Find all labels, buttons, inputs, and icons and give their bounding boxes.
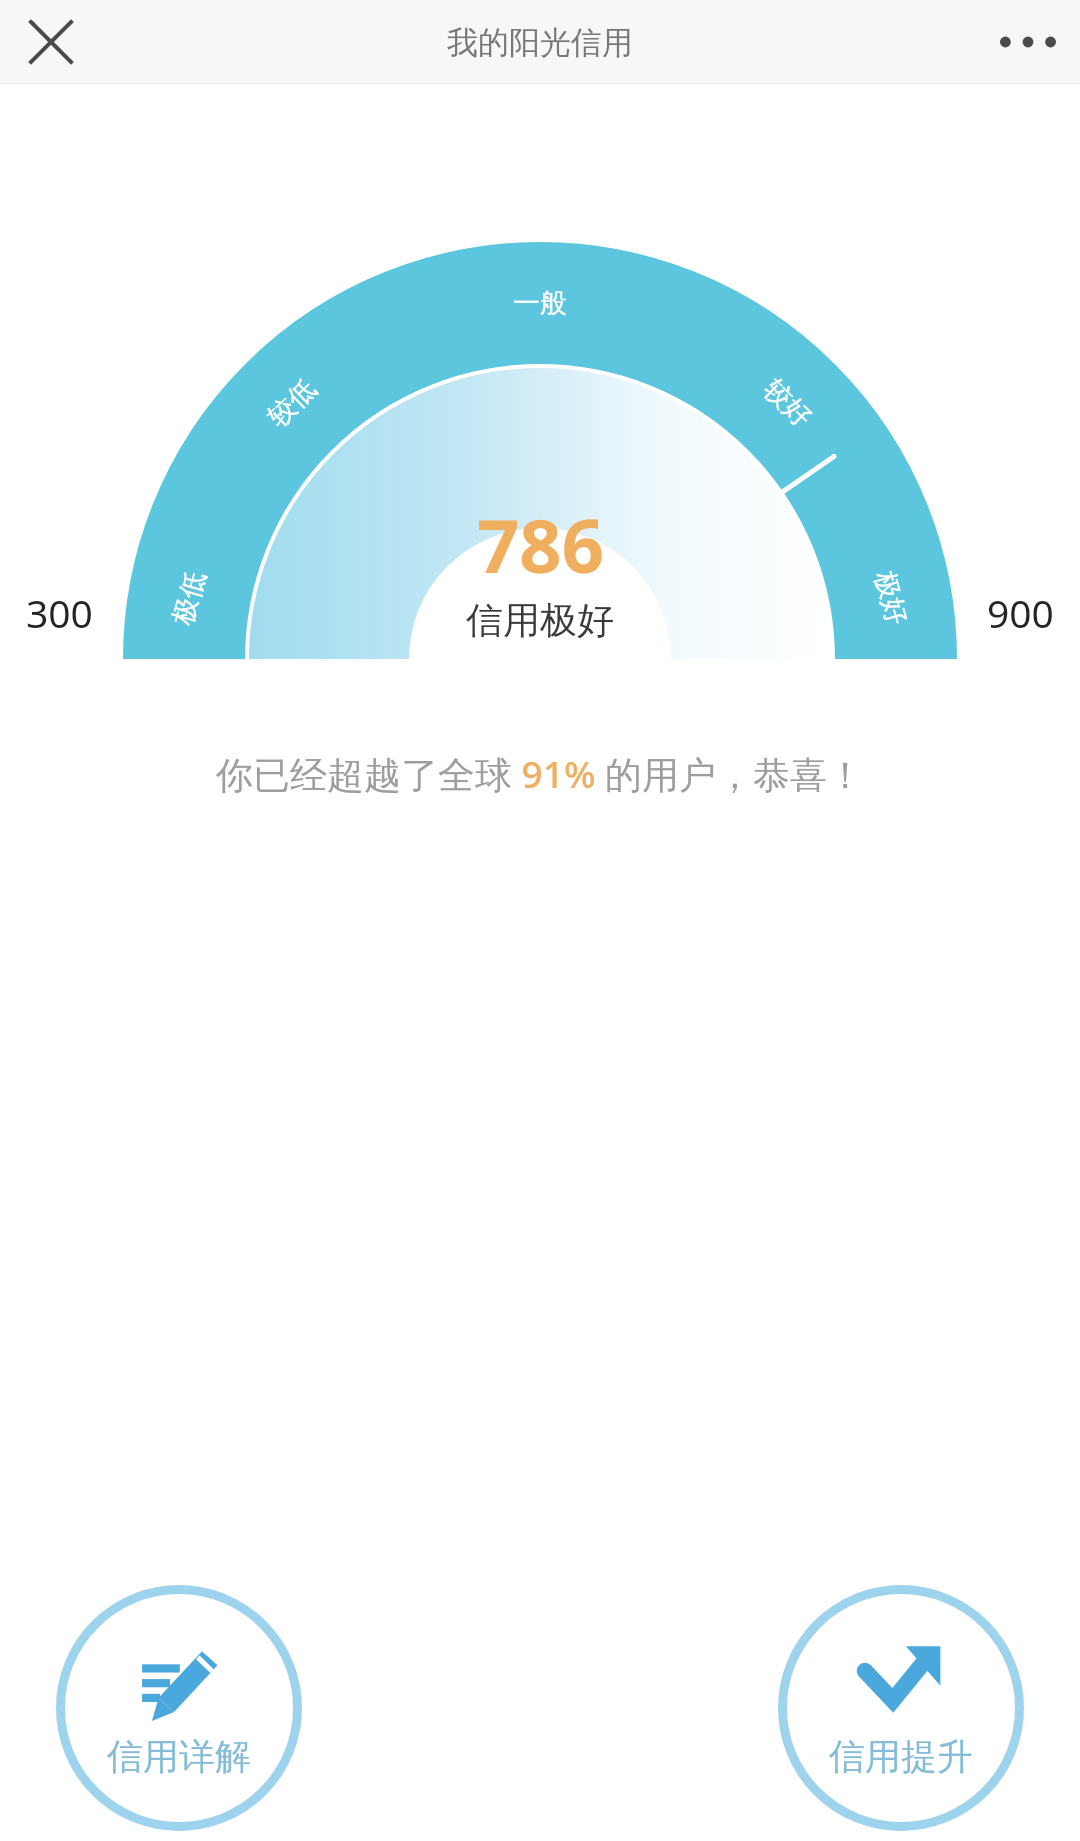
button[interactable]: More options xyxy=(988,2,1068,82)
staticText: 一般 xyxy=(513,286,567,320)
staticText: 我的阳光信用 xyxy=(447,23,633,62)
button[interactable]: Close xyxy=(16,7,86,77)
staticText: 900 xyxy=(987,586,1054,639)
staticText: 较好 xyxy=(757,372,819,434)
staticText: 786 xyxy=(477,494,604,595)
staticText: 极低 xyxy=(165,567,213,629)
staticText: 较低 xyxy=(261,372,323,434)
staticText: 信用详解 xyxy=(107,1734,251,1779)
staticText: 信用极好 xyxy=(466,597,614,644)
staticText: 300 xyxy=(26,586,93,639)
staticText: 你已经超越了全球 91% 的用户，恭喜！ xyxy=(216,748,865,799)
button[interactable]: 信用详解 xyxy=(56,1585,302,1831)
staticText: 极好 xyxy=(867,567,915,629)
staticText: 信用提升 xyxy=(829,1734,973,1779)
button[interactable]: 信用提升 xyxy=(778,1585,1024,1831)
